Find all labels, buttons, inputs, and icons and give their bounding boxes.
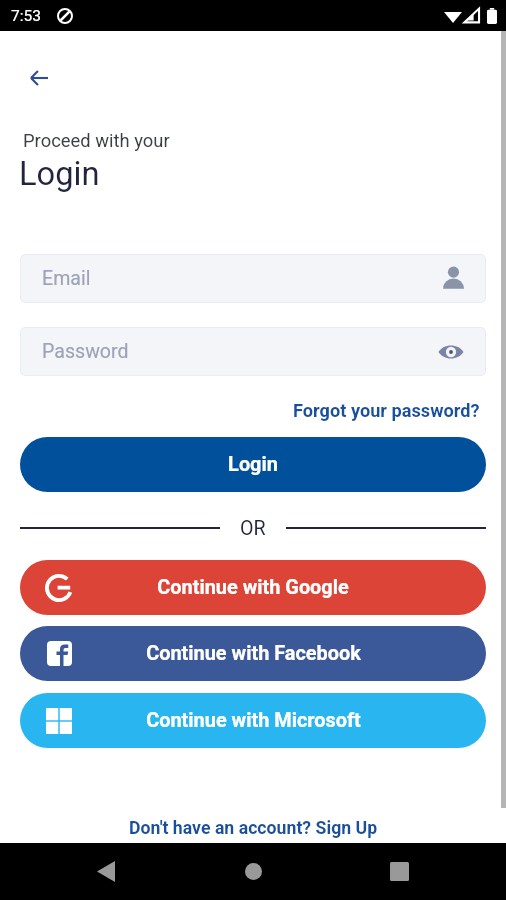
staticText: Continue with Google [157,576,349,599]
staticText: Password [42,340,129,363]
staticText: Continue with Microsoft [146,709,361,732]
button[interactable]: Back [82,843,130,900]
button[interactable]: Don't have an account? Sign Up [129,818,378,839]
button[interactable]: Email [20,254,486,303]
staticText: Email [42,267,91,290]
button[interactable]: Continue with Facebook [20,626,486,681]
button[interactable]: Home [229,843,277,900]
button[interactable]: Password [20,327,486,376]
button[interactable]: Recents [375,843,423,900]
button[interactable]: Forgot your password? [293,400,480,421]
button[interactable]: Login [20,437,486,492]
staticText: Continue with Facebook [146,642,361,665]
staticText: Login [228,453,278,476]
button[interactable]: Continue with Google [20,560,486,615]
staticText: Login [19,155,100,193]
staticText: OR [240,517,266,540]
staticText: Proceed with your [23,130,170,152]
button[interactable]: Back [19,58,59,98]
button[interactable]: Continue with Microsoft [20,693,486,748]
staticText: 7:53 [11,7,41,25]
